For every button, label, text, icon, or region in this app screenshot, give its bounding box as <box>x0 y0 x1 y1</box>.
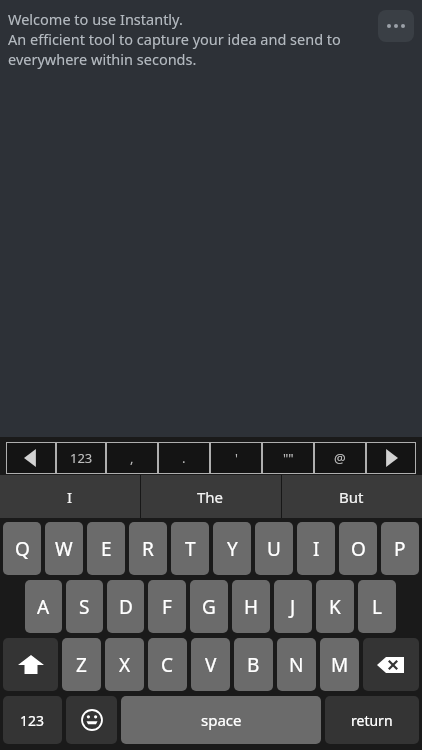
button[interactable]: D <box>107 580 144 633</box>
staticText: O <box>351 536 366 562</box>
staticText: Z <box>76 652 87 678</box>
button[interactable]: The <box>140 475 281 518</box>
staticText: 123 <box>70 449 93 467</box>
staticText: J <box>290 594 296 620</box>
button[interactable]: W <box>45 522 83 575</box>
staticText: Welcome to use Instantly. <box>8 9 183 29</box>
button[interactable]: K <box>316 580 354 633</box>
button[interactable]: U <box>255 522 293 575</box>
button[interactable]: L <box>358 580 396 633</box>
staticText: W <box>55 536 73 562</box>
staticText: A <box>37 594 50 620</box>
button[interactable]: Shift <box>3 638 58 691</box>
button[interactable]: "" <box>262 442 314 474</box>
button[interactable]: More options <box>378 10 414 42</box>
button[interactable]: Move cursor left <box>6 442 56 474</box>
button[interactable]: 123 <box>3 696 62 744</box>
staticText: I <box>67 487 73 507</box>
button[interactable]: M <box>320 638 359 691</box>
staticText: An efficient tool to capture your idea a… <box>8 29 341 49</box>
staticText: D <box>119 594 133 620</box>
staticText: F <box>162 594 172 620</box>
staticText: I <box>313 536 320 562</box>
staticText: S <box>79 594 90 620</box>
staticText: space <box>201 710 242 730</box>
staticText: G <box>202 594 216 620</box>
staticText: T <box>185 536 196 562</box>
button[interactable]: Y <box>213 522 251 575</box>
button[interactable]: 123 <box>56 442 106 474</box>
button[interactable]: E <box>87 522 125 575</box>
button[interactable]: G <box>190 580 228 633</box>
button[interactable]: T <box>171 522 209 575</box>
button[interactable]: space <box>121 696 321 744</box>
button[interactable]: @ <box>314 442 366 474</box>
staticText: M <box>331 652 349 678</box>
staticText: Y <box>227 536 238 562</box>
button[interactable]: C <box>148 638 187 691</box>
staticText: K <box>329 594 341 620</box>
button[interactable]: ' <box>210 442 262 474</box>
button[interactable]: N <box>277 638 316 691</box>
staticText: The <box>197 487 224 507</box>
staticText: X <box>119 652 131 678</box>
staticText: U <box>267 536 281 562</box>
button[interactable]: V <box>191 638 230 691</box>
staticText: @ <box>334 449 346 467</box>
staticText: C <box>161 652 174 678</box>
staticText: H <box>244 594 259 620</box>
button[interactable]: return <box>325 696 419 744</box>
button[interactable]: R <box>129 522 167 575</box>
staticText: return <box>351 711 393 730</box>
staticText: everywhere within seconds. <box>8 49 197 69</box>
staticText: , <box>130 449 134 467</box>
button[interactable]: F <box>148 580 186 633</box>
staticText: Q <box>15 536 30 562</box>
staticText: V <box>205 652 217 678</box>
button[interactable]: Emoji <box>66 696 117 744</box>
staticText: P <box>394 536 406 562</box>
staticText: E <box>101 536 112 562</box>
button[interactable]: Q <box>3 522 41 575</box>
button[interactable]: Move cursor right <box>366 442 416 474</box>
button[interactable]: S <box>66 580 103 633</box>
button[interactable]: But <box>281 475 422 518</box>
staticText: R <box>142 536 154 562</box>
button[interactable]: O <box>339 522 377 575</box>
button[interactable]: I <box>0 475 140 518</box>
button[interactable]: A <box>25 580 62 633</box>
staticText: But <box>339 487 364 507</box>
button[interactable]: P <box>381 522 419 575</box>
staticText: "" <box>283 449 294 467</box>
button[interactable]: B <box>234 638 273 691</box>
button[interactable]: J <box>274 580 312 633</box>
button[interactable]: H <box>232 580 270 633</box>
staticText: . <box>182 449 186 467</box>
button[interactable]: I <box>297 522 335 575</box>
staticText: L <box>372 594 382 620</box>
staticText: ' <box>235 449 238 467</box>
button[interactable]: Z <box>62 638 101 691</box>
button[interactable]: X <box>105 638 144 691</box>
button[interactable]: . <box>158 442 210 474</box>
staticText: B <box>247 652 260 678</box>
staticText: N <box>289 652 304 678</box>
button[interactable]: , <box>106 442 158 474</box>
staticText: 123 <box>20 711 45 730</box>
button[interactable]: Backspace <box>363 638 419 691</box>
